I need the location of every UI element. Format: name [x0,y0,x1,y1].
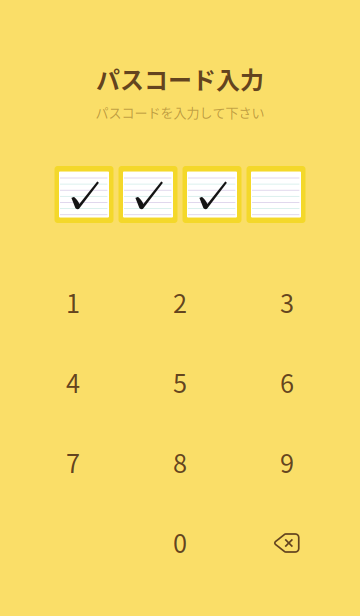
staticText: 0 [173,524,187,560]
staticText: 9 [280,444,294,480]
staticText: パスコード入力 [96,61,264,96]
staticText: パスコードを入力して下さい [95,102,264,121]
staticText: 5 [173,364,187,400]
button[interactable]: 7 [19,423,126,501]
button[interactable]: 5 [126,343,233,421]
button[interactable]: 4 [19,343,126,421]
staticText: 1 [66,284,80,320]
staticText: 8 [173,444,187,480]
staticText: 4 [66,364,80,400]
button[interactable]: 8 [126,423,233,501]
button[interactable]: Delete [233,504,340,582]
button[interactable]: 9 [233,423,340,501]
button[interactable]: 3 [233,263,340,341]
staticText: 6 [280,364,294,400]
button[interactable]: 2 [126,263,233,341]
button[interactable]: 1 [19,263,126,341]
staticText: 7 [66,444,80,480]
button[interactable]: 6 [233,343,340,421]
button[interactable]: 0 [126,503,233,581]
staticText: 2 [173,284,187,320]
staticText: 3 [280,284,294,320]
